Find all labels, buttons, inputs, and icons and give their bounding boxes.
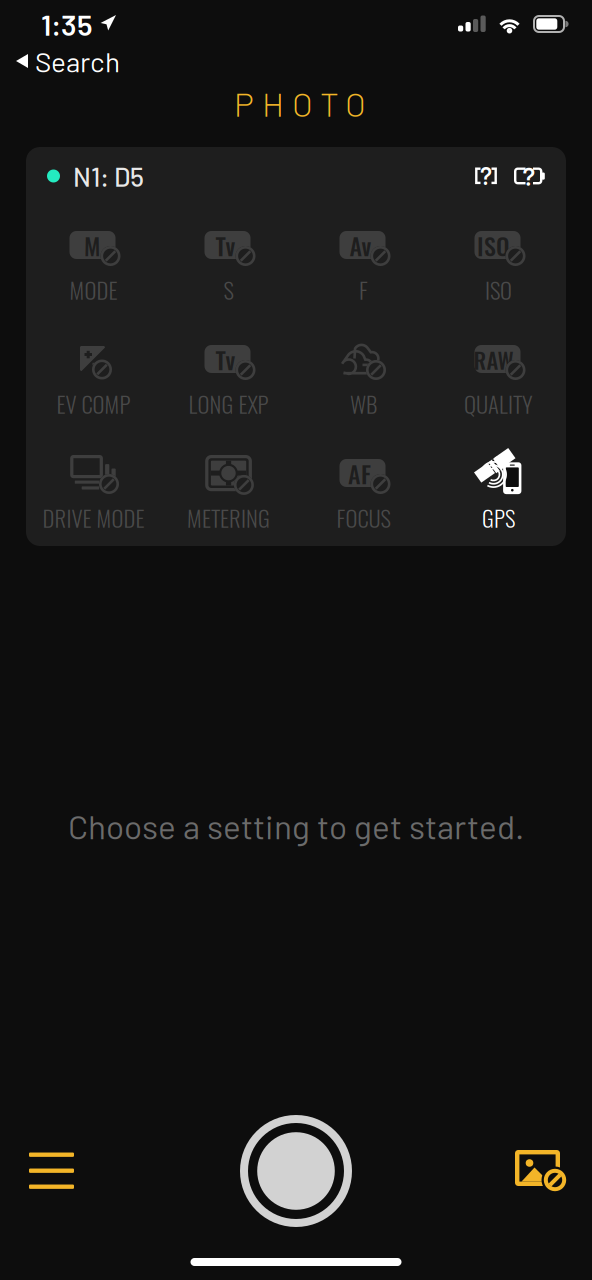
staticText: WB (350, 387, 377, 420)
staticText: AF (348, 456, 371, 491)
staticText: N1: D5 (73, 160, 144, 192)
staticText: PHOTO (234, 83, 366, 123)
button[interactable]: Shutter (238, 1113, 354, 1229)
button[interactable]: RAW (431, 341, 566, 414)
button[interactable]: Search (0, 48, 136, 74)
staticText: F (359, 273, 368, 306)
staticText: FOCUS (336, 501, 390, 534)
staticText: ? (480, 161, 492, 190)
staticText: Choose a setting to get started. (68, 806, 524, 846)
staticText: DRIVE MODE (42, 501, 144, 534)
button[interactable]: AF (296, 455, 431, 528)
staticText: GPS (482, 501, 515, 534)
staticText: Tv (215, 228, 235, 263)
button[interactable]: DRIVE MODE (26, 455, 161, 528)
button[interactable]: Tv (161, 341, 296, 414)
button[interactable]: Tv (161, 227, 296, 300)
staticText: M (84, 228, 100, 263)
button[interactable]: Gallery (492, 1122, 590, 1220)
button[interactable]: Menu (3, 1122, 100, 1219)
staticText: QUALITY (464, 387, 533, 420)
staticText: LONG EXP (188, 387, 268, 420)
staticText: Tv (215, 342, 235, 377)
staticText: RAW (473, 343, 513, 376)
button[interactable]: M (26, 227, 161, 300)
staticText: S (223, 273, 233, 306)
button[interactable]: Av (296, 227, 431, 300)
staticText: EV COMP (56, 387, 130, 420)
button[interactable]: EV COMP (26, 341, 161, 414)
button[interactable]: WB (296, 341, 431, 414)
button[interactable]: ISO (431, 227, 566, 300)
staticText: ? (522, 160, 535, 191)
button[interactable]: METERING (161, 455, 296, 528)
staticText: METERING (187, 501, 270, 534)
staticText: Search (35, 44, 120, 78)
staticText: Av (349, 228, 371, 263)
staticText: MODE (69, 273, 117, 306)
staticText: ISO (477, 228, 510, 263)
button[interactable]: GPS (431, 455, 566, 528)
staticText: 1:35 (41, 6, 93, 42)
staticText: ISO (485, 273, 512, 306)
